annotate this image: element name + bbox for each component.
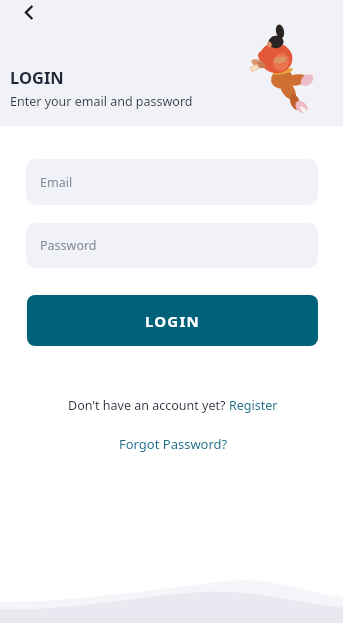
staticText: Password xyxy=(40,237,97,254)
staticText: Email xyxy=(40,174,73,191)
button[interactable] xyxy=(14,0,44,27)
button[interactable]: Email xyxy=(26,159,318,205)
staticText: LOGIN xyxy=(145,311,200,331)
button[interactable]: LOGIN xyxy=(27,295,318,346)
staticText: Forgot Password? xyxy=(119,435,228,453)
button[interactable]: Register xyxy=(229,397,278,414)
button[interactable]: Forgot Password? xyxy=(119,435,228,453)
staticText: Don't have an account yet? xyxy=(68,397,229,414)
staticText: Register xyxy=(229,397,278,414)
button[interactable]: Password xyxy=(26,223,318,268)
staticText: Enter your email and password xyxy=(10,93,193,110)
staticText: LOGIN xyxy=(10,66,64,88)
